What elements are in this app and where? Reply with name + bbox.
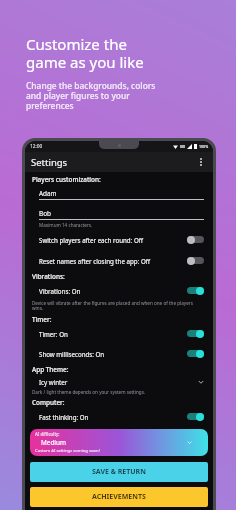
staticText: Players customization: — [32, 175, 101, 184]
button[interactable]: ACHIEVEMENTS — [30, 487, 208, 507]
staticText: Bob — [39, 209, 51, 218]
button[interactable]: Reset names after closing the app: Off — [30, 252, 208, 269]
button[interactable]: More options — [195, 156, 207, 168]
button[interactable]: SAVE & RETURN — [30, 462, 208, 482]
button[interactable]: Show milliseconds: On — [30, 345, 208, 362]
staticText: ACHIEVEMENTS — [92, 492, 146, 502]
staticText: Icy winter — [39, 378, 198, 386]
staticText: Settings — [31, 156, 195, 169]
staticText: Timer: On — [39, 330, 187, 338]
button[interactable]: Toggle off — [187, 256, 204, 265]
staticText: App Theme: — [32, 365, 69, 374]
staticText: AI difficulty: — [35, 431, 60, 437]
button[interactable]: AI difficulty: — [30, 429, 208, 456]
staticText: Custom AI settings coming soon! — [35, 448, 100, 454]
button[interactable]: Vibrations: On — [30, 282, 208, 299]
button[interactable]: Toggle on — [187, 286, 204, 295]
button[interactable]: Toggle off — [187, 235, 204, 244]
staticText: Vibrations: — [32, 272, 65, 281]
staticText: Change the backgrounds, colors and playe… — [26, 80, 156, 112]
staticText: Customize the game as you like — [26, 34, 144, 73]
staticText: Vibrations: On — [39, 287, 187, 295]
button[interactable]: Toggle on — [187, 412, 204, 421]
staticText: 100% — [199, 144, 209, 149]
staticText: Show milliseconds: On — [39, 350, 187, 358]
button[interactable]: Fast thinking: On — [30, 408, 208, 425]
button[interactable]: Toggle on — [187, 329, 204, 338]
staticText: Maximum 14 characters. — [39, 222, 93, 228]
button[interactable]: Timer: On — [30, 325, 208, 342]
staticText: 12:00 — [30, 143, 43, 150]
button[interactable]: Icy winter — [30, 375, 208, 388]
staticText: Adam — [39, 189, 57, 198]
staticText: Switch players after each round: Off — [39, 236, 187, 244]
staticText: Reset names after closing the app: Off — [39, 257, 187, 265]
button[interactable]: Toggle on — [187, 349, 204, 358]
button[interactable]: Switch players after each round: Off — [30, 231, 208, 248]
staticText: Timer: — [32, 315, 52, 324]
staticText: Medium — [41, 438, 66, 447]
staticText: Device will vibrate after the figures ar… — [32, 300, 202, 312]
staticText: SAVE & RETURN — [92, 467, 146, 477]
staticText: Fast thinking: On — [39, 413, 187, 421]
staticText: Computer: — [32, 398, 65, 407]
staticText: Dark / light theme depends on your syste… — [32, 389, 146, 395]
